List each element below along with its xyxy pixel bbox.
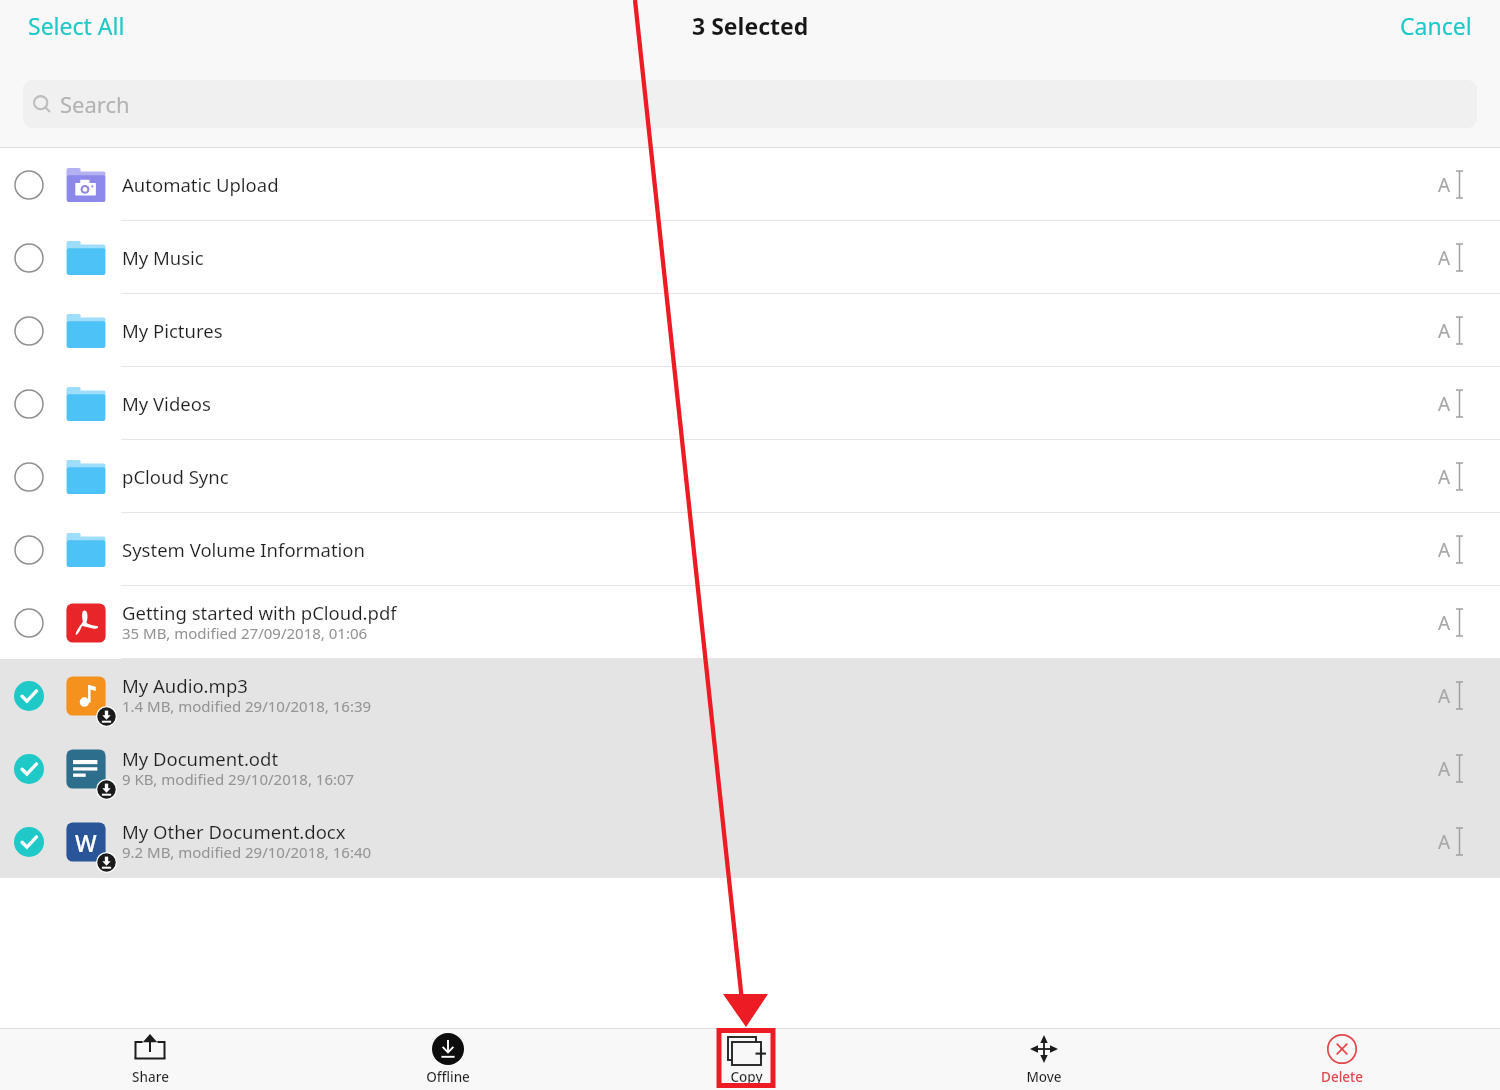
button[interactable]: More options xyxy=(1400,148,1500,221)
button[interactable]: Select My Music xyxy=(0,221,1500,294)
button[interactable]: Select Automatic Upload xyxy=(14,170,44,200)
button[interactable]: Select My Pictures xyxy=(0,294,1500,367)
staticText: A xyxy=(1438,172,1451,198)
button[interactable]: Select My Videos xyxy=(0,367,1500,440)
button[interactable]: More options xyxy=(1400,805,1500,878)
staticText: A xyxy=(1438,829,1451,855)
staticText: My Pictures xyxy=(122,318,223,343)
staticText: My Videos xyxy=(122,391,211,416)
button[interactable]: Offline xyxy=(299,1029,597,1090)
button[interactable]: More options xyxy=(1400,659,1500,732)
staticText: A xyxy=(1438,318,1451,344)
button[interactable]: Select My Videos xyxy=(14,389,44,419)
button[interactable]: Select Automatic Upload xyxy=(0,148,1500,221)
button[interactable]: Select System Volume Information xyxy=(0,513,1500,586)
staticText: Copy xyxy=(730,1068,763,1086)
staticText: A xyxy=(1438,756,1451,782)
staticText: Cancel xyxy=(1400,10,1472,40)
staticText: A xyxy=(1438,391,1451,417)
staticText: Offline xyxy=(426,1068,470,1086)
staticText: Automatic Upload xyxy=(122,172,279,197)
staticText: My Audio.mp3 xyxy=(122,673,248,698)
staticText: My Music xyxy=(122,245,204,270)
staticText: 35 MB, modified 27/09/2018, 01:06 xyxy=(122,623,368,643)
button[interactable]: More options xyxy=(1400,221,1500,294)
button[interactable]: More options xyxy=(1400,367,1500,440)
staticText: Getting started with pCloud.pdf xyxy=(122,600,397,625)
button[interactable]: Select pCloud Sync xyxy=(14,462,44,492)
button[interactable]: More options xyxy=(1400,586,1500,659)
button[interactable]: Deselect My Audio.mp3 xyxy=(14,681,44,711)
staticText: A xyxy=(1438,245,1451,271)
button[interactable]: Select pCloud Sync xyxy=(0,440,1500,513)
button[interactable]: Deselect My Other Document.docx xyxy=(0,805,1500,878)
button[interactable]: Cancel xyxy=(1380,0,1500,50)
staticText: Share xyxy=(132,1068,169,1086)
button[interactable]: Select Getting started with pCloud.pdf xyxy=(0,586,1500,659)
button[interactable]: Deselect My Document.odt xyxy=(0,732,1500,805)
staticText: A xyxy=(1438,537,1451,563)
button[interactable]: Select System Volume Information xyxy=(14,535,44,565)
button[interactable]: More options xyxy=(1400,513,1500,586)
button[interactable]: Share xyxy=(1,1029,299,1090)
button[interactable]: More options xyxy=(1400,294,1500,367)
staticText: Move xyxy=(1026,1068,1062,1086)
button[interactable]: More options xyxy=(1400,732,1500,805)
button[interactable]: Deselect My Audio.mp3 xyxy=(0,659,1500,732)
button[interactable]: Select My Pictures xyxy=(14,316,44,346)
staticText: 3 Selected xyxy=(692,10,809,41)
staticText: System Volume Information xyxy=(122,537,365,562)
button[interactable]: Deselect My Document.odt xyxy=(14,754,44,784)
button[interactable]: Select My Music xyxy=(14,243,44,273)
button[interactable]: More options xyxy=(1400,440,1500,513)
staticText: Search xyxy=(60,89,130,119)
staticText: My Other Document.docx xyxy=(122,819,346,844)
staticText: 9.2 MB, modified 29/10/2018, 16:40 xyxy=(122,842,372,862)
staticText: 9 KB, modified 29/10/2018, 16:07 xyxy=(122,769,355,789)
button[interactable]: Deselect My Other Document.docx xyxy=(14,827,44,857)
staticText: A xyxy=(1438,610,1451,636)
staticText: My Document.odt xyxy=(122,746,279,771)
button[interactable]: Select All xyxy=(0,0,145,50)
staticText: 1.4 MB, modified 29/10/2018, 16:39 xyxy=(122,696,372,716)
button[interactable]: Delete xyxy=(1193,1029,1491,1090)
staticText: A xyxy=(1438,683,1451,709)
staticText: pCloud Sync xyxy=(122,464,229,489)
button[interactable]: Search xyxy=(23,80,1477,128)
staticText: Delete xyxy=(1321,1068,1363,1086)
button[interactable]: Copy xyxy=(597,1029,895,1090)
button[interactable]: Move xyxy=(895,1029,1193,1090)
staticText: A xyxy=(1438,464,1451,490)
staticText: Select All xyxy=(28,10,125,40)
staticText: W xyxy=(75,827,97,858)
button[interactable]: Select Getting started with pCloud.pdf xyxy=(14,608,44,638)
